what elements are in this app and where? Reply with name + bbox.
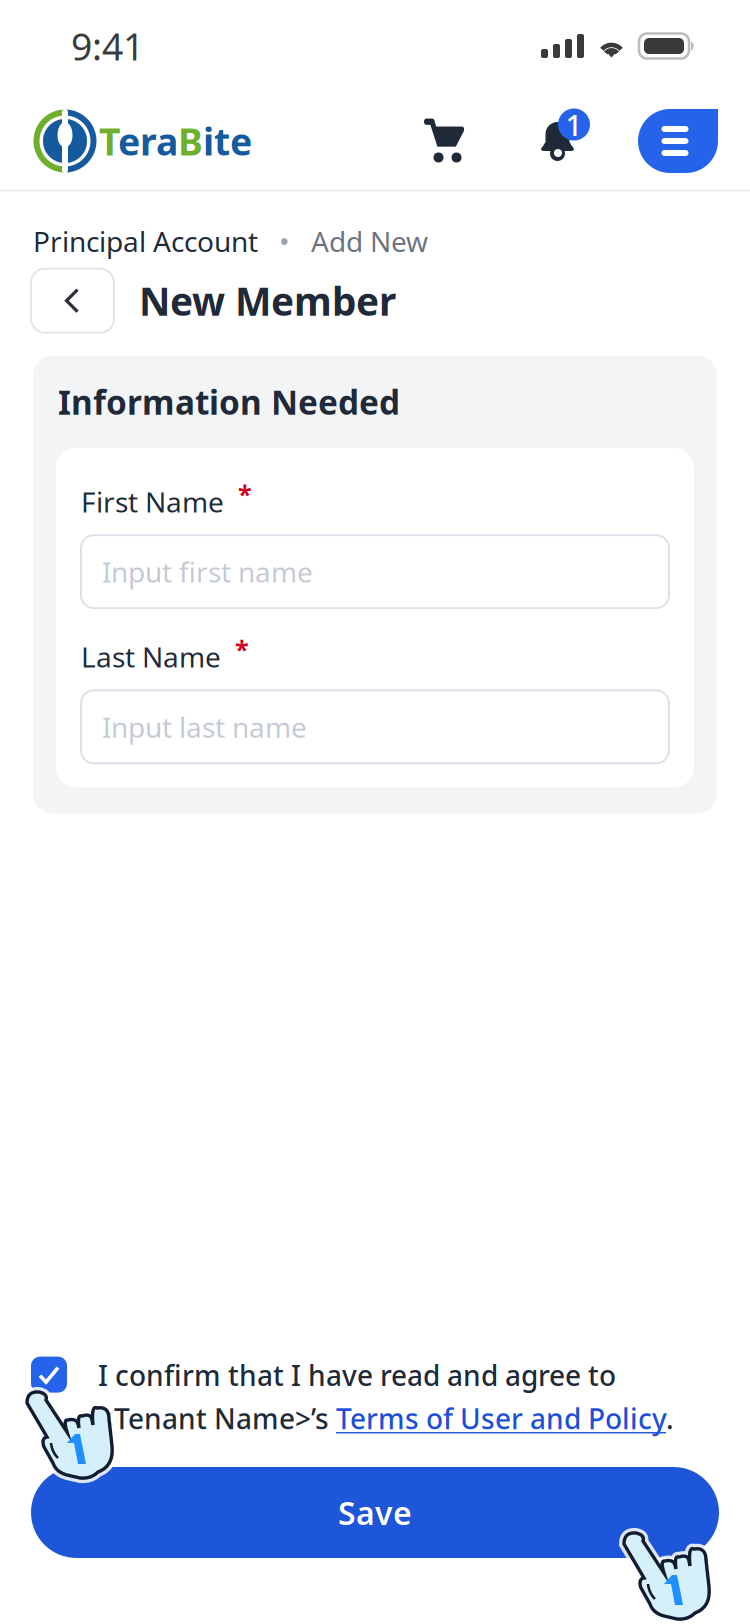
button[interactable]: Back: [31, 269, 114, 333]
staticText: New Member: [139, 275, 396, 326]
staticText: 1: [565, 105, 582, 144]
staticText: Save: [338, 1491, 412, 1534]
staticText: 9:41: [71, 21, 144, 71]
staticText: I confirm that I have read and agree to: [98, 1357, 616, 1394]
staticText: Principal Account • Add New: [33, 222, 428, 260]
staticText: <Tenant Name>’s Terms of User and Policy…: [98, 1400, 674, 1437]
button[interactable]: Save: [31, 1467, 719, 1558]
staticText: Information Needed: [58, 380, 400, 424]
staticText: First Name *: [81, 477, 252, 520]
button[interactable]: Notifications: [540, 114, 590, 167]
staticText: TeraBite: [99, 116, 252, 166]
staticText: Input first name: [102, 553, 313, 590]
button[interactable]: Cart: [424, 118, 465, 163]
button[interactable]: Menu: [638, 109, 718, 173]
staticText: Input last name: [102, 708, 307, 745]
button[interactable]: Confirm terms and policy: [31, 1357, 67, 1393]
staticText: Last Name *: [81, 632, 249, 675]
